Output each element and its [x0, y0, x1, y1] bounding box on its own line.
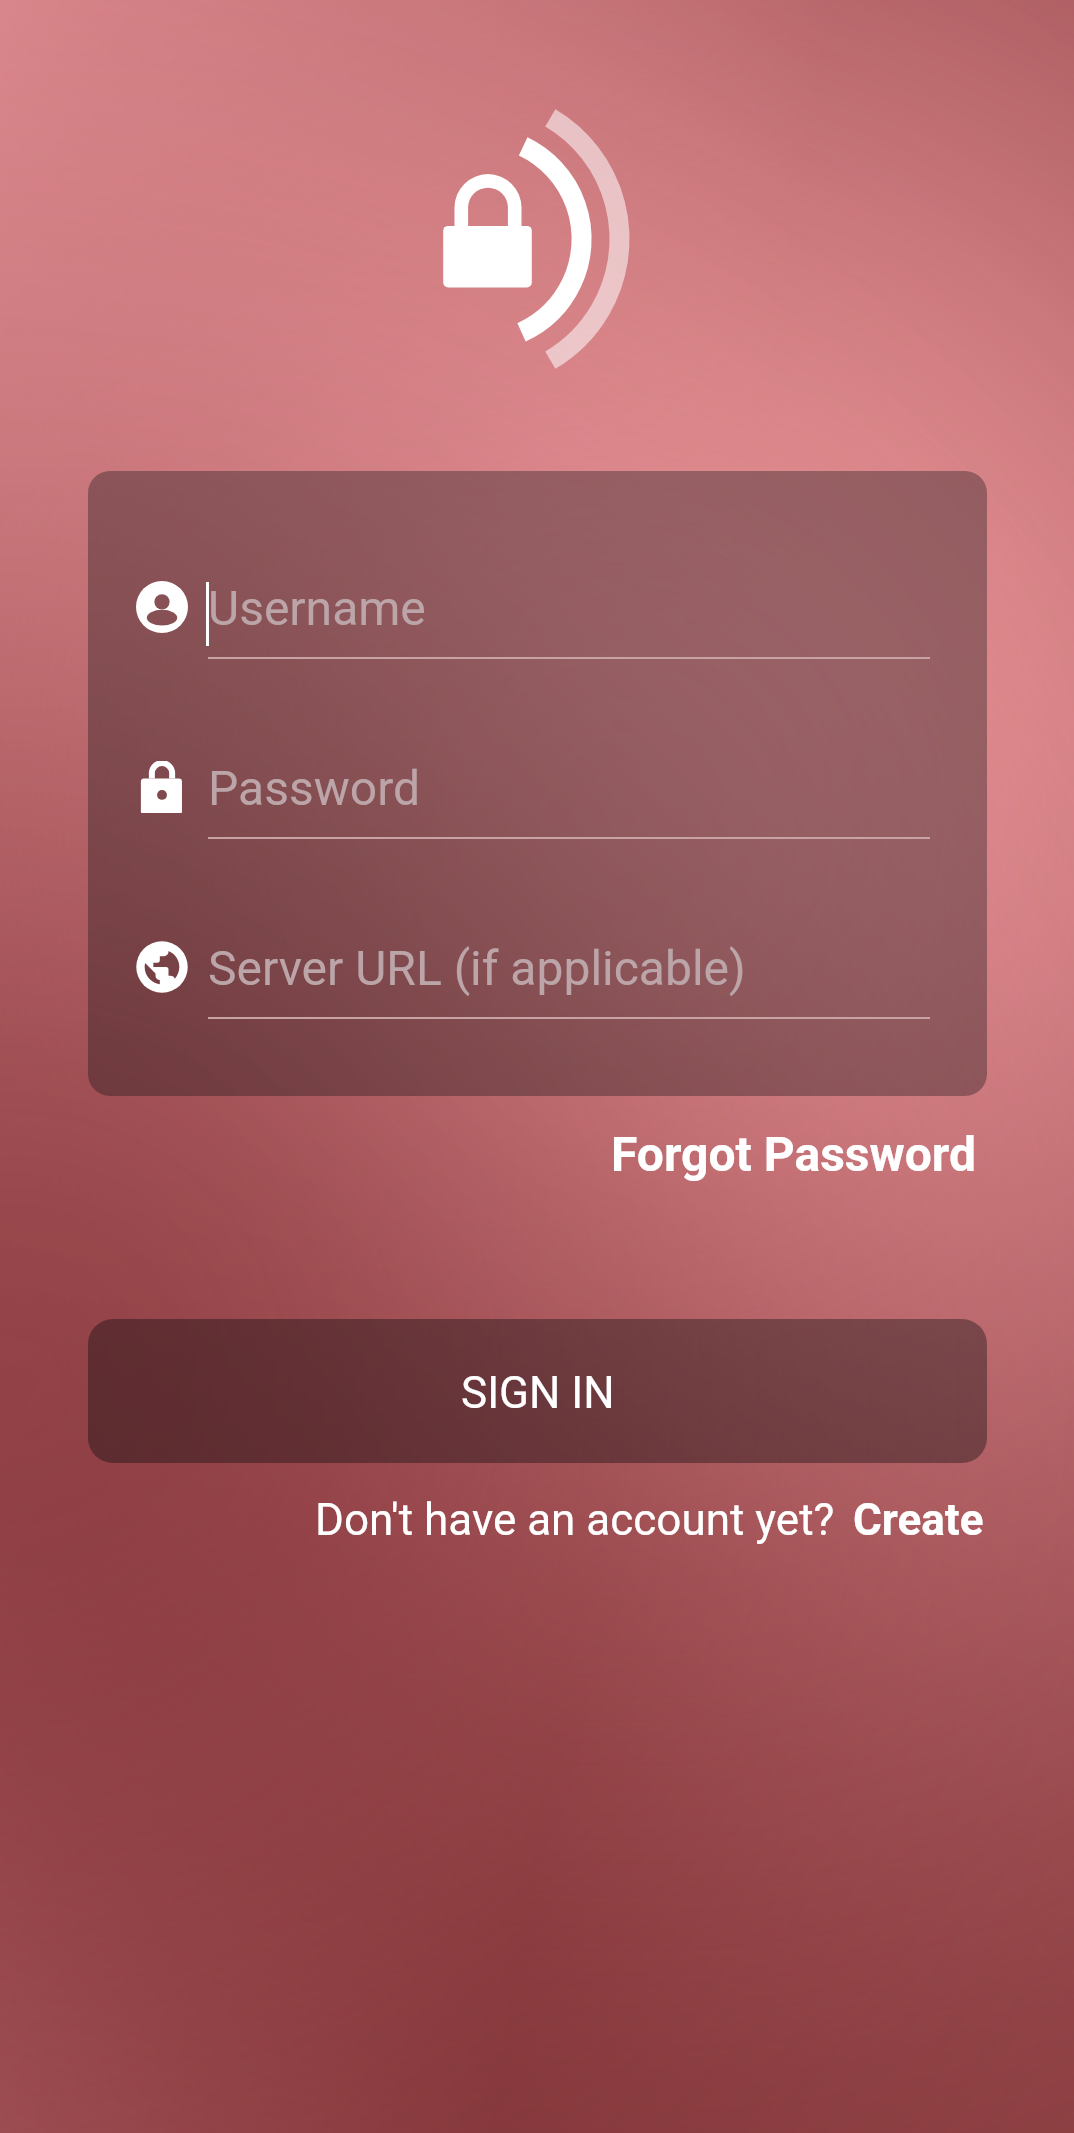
other: Server URL (if applicable): [136, 941, 188, 993]
staticText: Server URL (if applicable): [208, 940, 746, 996]
staticText: Password: [208, 760, 421, 816]
button[interactable]: Forgot Password: [595, 1112, 992, 1196]
button[interactable]: SIGN IN: [88, 1319, 987, 1463]
button[interactable]: Server URL (if applicable): [88, 931, 987, 1041]
other: Username: [136, 581, 188, 633]
button[interactable]: Username: [88, 571, 987, 681]
button[interactable]: Password: [88, 751, 987, 861]
other: Secure login logo: [330, 100, 670, 390]
staticText: SIGN IN: [461, 1367, 615, 1419]
button[interactable]: Create: [853, 1494, 984, 1546]
other: Password: [136, 761, 188, 813]
staticText: Username: [208, 580, 426, 636]
staticText: Create: [853, 1494, 984, 1546]
staticText: Forgot Password: [611, 1126, 976, 1182]
staticText: Don't have an account yet?: [315, 1494, 835, 1546]
